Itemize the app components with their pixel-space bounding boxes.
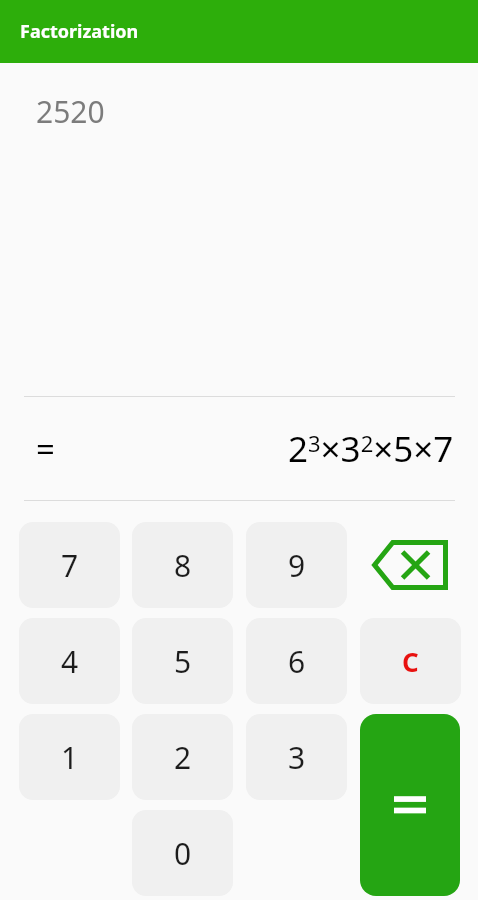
button[interactable]: 6	[246, 618, 347, 704]
button[interactable]: 5	[132, 618, 233, 704]
staticText: C	[402, 644, 419, 679]
button[interactable]: 2	[132, 714, 233, 800]
button[interactable]: 0	[132, 810, 233, 896]
staticText: 7	[61, 545, 79, 586]
staticText: 3	[288, 737, 306, 778]
staticText: 2520	[36, 91, 105, 132]
staticText: 4	[61, 641, 79, 682]
button[interactable]: 3	[246, 714, 347, 800]
staticText: 8	[174, 545, 192, 586]
button[interactable]: C	[360, 618, 461, 704]
staticText: Factorization	[20, 19, 139, 44]
staticText: 9	[288, 545, 306, 586]
staticText: 2	[174, 737, 192, 778]
staticText: 23×32×5×7	[288, 425, 454, 473]
staticText: 6	[288, 641, 306, 682]
staticText: 0	[174, 833, 192, 874]
button[interactable]: Backspace	[360, 522, 461, 608]
button[interactable]: 4	[19, 618, 120, 704]
button[interactable]: 1	[19, 714, 120, 800]
staticText: 1	[61, 737, 79, 778]
button[interactable]	[360, 714, 460, 896]
staticText: =	[36, 426, 55, 471]
button[interactable]: 9	[246, 522, 347, 608]
staticText: 5	[174, 641, 192, 682]
button[interactable]: 7	[19, 522, 120, 608]
button[interactable]: 8	[132, 522, 233, 608]
